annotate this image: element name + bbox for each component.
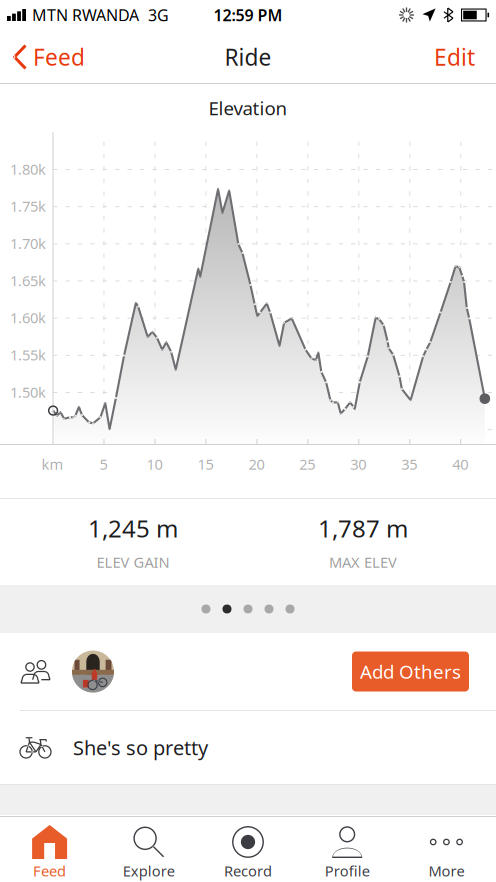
staticText: 15 bbox=[197, 454, 213, 474]
staticText: km bbox=[41, 454, 63, 474]
button[interactable]: Explore bbox=[99, 816, 198, 882]
staticText: Edit bbox=[434, 42, 475, 72]
staticText: Elevation bbox=[208, 96, 287, 120]
button[interactable]: Feed bbox=[0, 32, 95, 82]
staticText: Add Others bbox=[360, 659, 461, 684]
staticText: 1,787 m bbox=[318, 512, 408, 544]
button[interactable]: Record bbox=[198, 816, 298, 882]
button[interactable]: Add Others bbox=[352, 651, 469, 691]
staticText: Profile bbox=[325, 861, 370, 880]
staticText: More bbox=[428, 861, 464, 880]
staticText: Feed bbox=[33, 42, 85, 72]
staticText: Record bbox=[224, 861, 272, 880]
button[interactable]: Feed bbox=[0, 816, 99, 882]
staticText: MTN RWANDA bbox=[32, 4, 139, 26]
staticText: 1.70k bbox=[10, 234, 46, 253]
staticText: 1.80k bbox=[10, 159, 46, 179]
button[interactable]: More bbox=[397, 816, 496, 882]
staticText: Explore bbox=[123, 861, 175, 880]
staticText: Ride bbox=[224, 42, 271, 72]
staticText: MAX ELEV bbox=[329, 552, 397, 572]
staticText: 1.50k bbox=[10, 382, 46, 402]
staticText: 3G bbox=[148, 4, 169, 26]
button[interactable]: Profile bbox=[298, 816, 397, 882]
staticText: 30 bbox=[350, 454, 366, 474]
staticText: She's so pretty bbox=[73, 734, 208, 761]
staticText: Feed bbox=[33, 861, 66, 880]
staticText: 40 bbox=[452, 454, 468, 474]
staticText: 1.60k bbox=[10, 308, 46, 327]
staticText: 1.65k bbox=[10, 271, 46, 290]
staticText: 25 bbox=[299, 454, 315, 474]
staticText: 10 bbox=[146, 454, 162, 474]
staticText: 1.55k bbox=[10, 345, 46, 365]
staticText: 35 bbox=[401, 454, 417, 474]
staticText: ELEV GAIN bbox=[96, 552, 169, 572]
staticText: 1.75k bbox=[10, 196, 46, 216]
staticText: 12:59 PM bbox=[213, 4, 282, 26]
staticText: 1,245 m bbox=[88, 512, 178, 544]
staticText: 20 bbox=[248, 454, 264, 474]
button[interactable]: Edit bbox=[420, 32, 489, 82]
staticText: 5 bbox=[99, 454, 107, 474]
